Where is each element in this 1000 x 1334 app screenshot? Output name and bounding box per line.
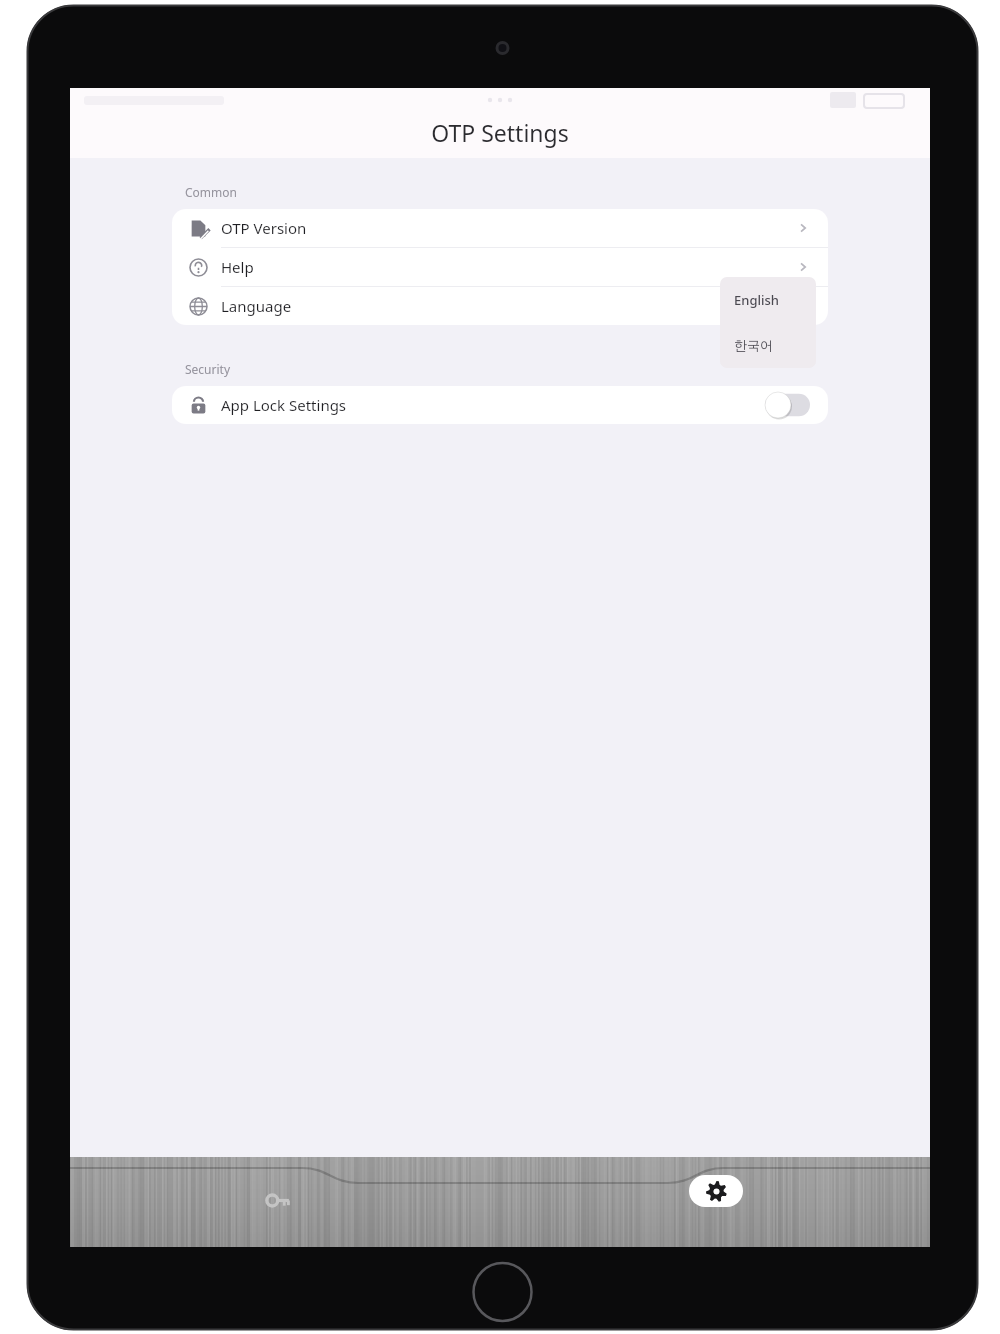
- staticText: Help: [221, 257, 796, 277]
- button[interactable]: App lock toggle: [765, 392, 810, 418]
- button[interactable]: Tokens: [256, 1179, 300, 1223]
- staticText: English: [734, 291, 779, 309]
- staticText: OTP Version: [221, 218, 796, 238]
- staticText: OTP Settings: [431, 117, 569, 148]
- staticText: Common: [185, 184, 237, 200]
- staticText: 한국어: [734, 337, 773, 353]
- button[interactable]: English: [720, 277, 816, 322]
- staticText: Security: [185, 361, 231, 377]
- staticText: App Lock Settings: [221, 395, 765, 415]
- button[interactable]: 한국어: [720, 322, 816, 368]
- button[interactable]: OTP Version: [172, 209, 828, 247]
- button[interactable]: Settings: [689, 1175, 743, 1207]
- button[interactable]: Language: [172, 287, 828, 325]
- button[interactable]: Help: [172, 248, 828, 286]
- staticText: Language: [221, 296, 810, 316]
- button[interactable]: App Lock Settings: [172, 386, 828, 424]
